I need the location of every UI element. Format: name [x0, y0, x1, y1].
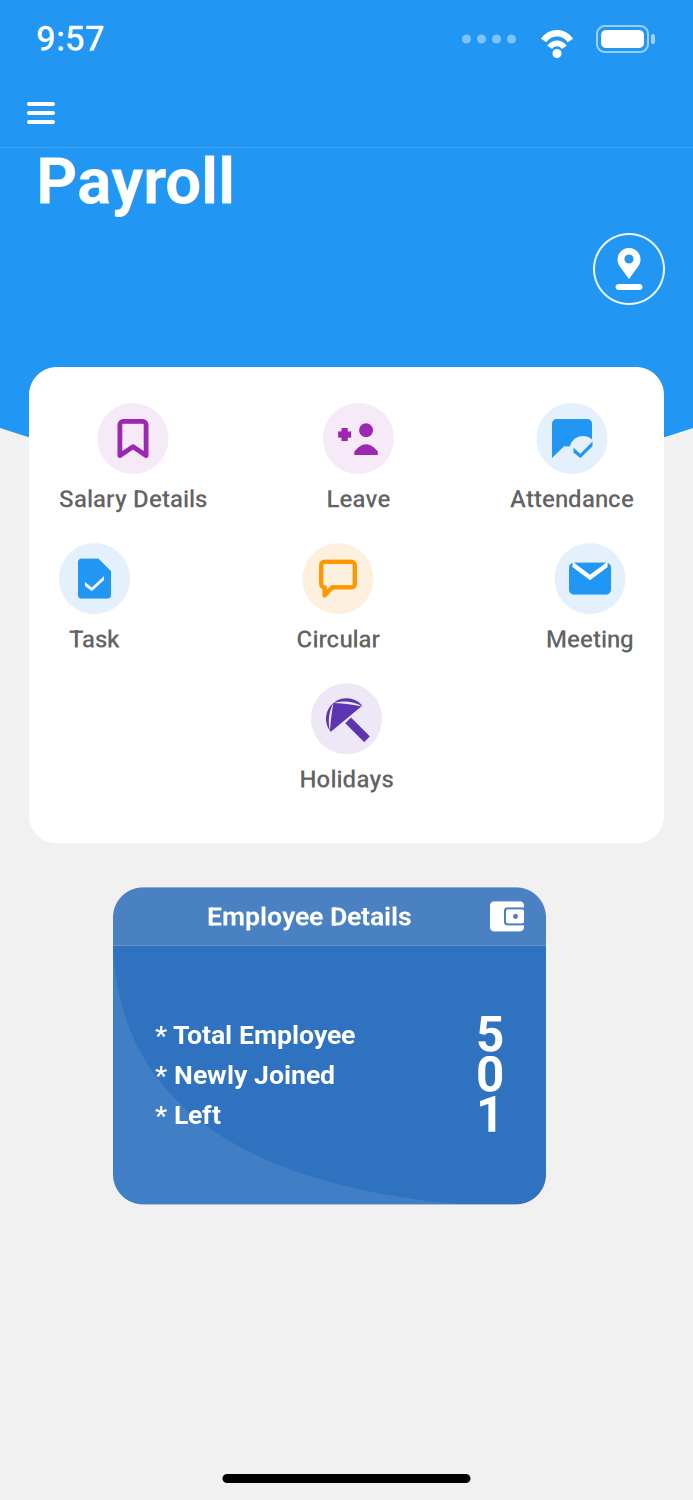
staticText: 9:57: [36, 19, 105, 59]
staticText: Circular: [296, 625, 379, 653]
staticText: Holidays: [299, 765, 393, 793]
button[interactable]: Location: [592, 232, 666, 306]
staticText: Attendance: [510, 485, 634, 513]
staticText: Employee Details: [207, 901, 412, 932]
staticText: Payroll: [36, 144, 235, 219]
button[interactable]: Attendance: [510, 403, 634, 513]
button[interactable]: Leave: [323, 403, 394, 513]
button[interactable]: Holidays: [299, 683, 393, 793]
staticText: 5: [476, 1006, 504, 1064]
button[interactable]: Task: [59, 543, 130, 653]
button[interactable]: Meeting: [546, 543, 634, 653]
staticText: Leave: [326, 485, 390, 513]
button[interactable]: Menu: [13, 85, 69, 141]
button[interactable]: Salary Details: [59, 403, 207, 513]
staticText: * Left: [155, 1099, 221, 1130]
staticText: * Newly Joined: [155, 1059, 335, 1090]
staticText: Salary Details: [59, 485, 207, 513]
staticText: 1: [476, 1086, 504, 1144]
staticText: 0: [476, 1046, 504, 1104]
staticText: Meeting: [546, 625, 634, 653]
staticText: Task: [69, 625, 120, 653]
staticText: * Total Employee: [155, 1019, 355, 1050]
button[interactable]: Circular: [296, 543, 379, 653]
